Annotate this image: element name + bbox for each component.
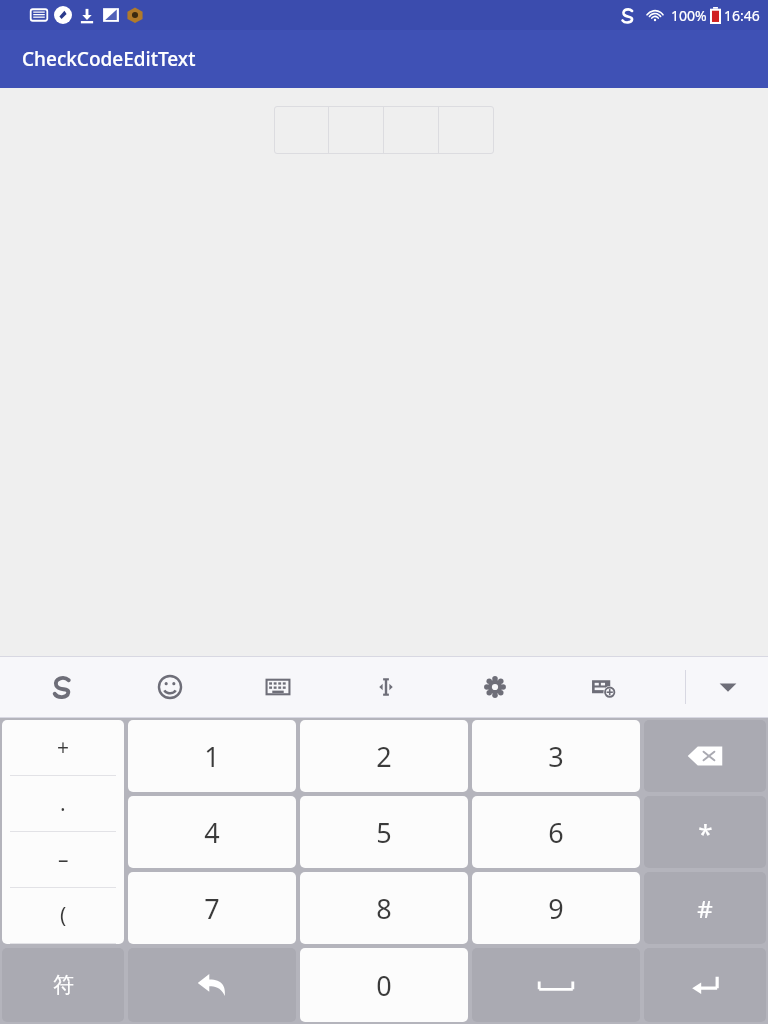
staticText: *: [698, 815, 713, 850]
button[interactable]: Backspace: [644, 720, 766, 792]
button[interactable]: Emoji: [142, 659, 198, 715]
staticText: 4: [204, 814, 220, 851]
staticText: +: [57, 733, 70, 762]
button[interactable]: Back: [128, 948, 296, 1022]
button[interactable]: 5: [300, 796, 468, 868]
staticText: #: [697, 892, 713, 925]
staticText: .: [60, 789, 66, 818]
button[interactable]: *: [644, 796, 766, 868]
staticText: –: [58, 845, 69, 874]
button[interactable]: 8: [300, 872, 468, 944]
button[interactable]: 6: [472, 796, 640, 868]
staticText: 6: [548, 814, 564, 851]
staticText: CheckCodeEditText: [22, 46, 196, 72]
button[interactable]: #: [644, 872, 766, 944]
staticText: 8: [376, 890, 392, 927]
button[interactable]: Move cursor: [358, 659, 414, 715]
button[interactable]: Keyboard layout: [250, 659, 306, 715]
button[interactable]: 2: [300, 720, 468, 792]
button[interactable]: 1: [128, 720, 296, 792]
staticText: 16:46: [724, 6, 760, 25]
button[interactable]: Enter: [644, 948, 766, 1022]
staticText: 2: [376, 738, 392, 775]
button[interactable]: +: [2, 720, 124, 944]
staticText: 3: [548, 738, 564, 775]
button[interactable]: Add keyboard: [576, 659, 632, 715]
button[interactable]: 0: [300, 948, 468, 1022]
staticText: 7: [204, 890, 220, 927]
button[interactable]: 7: [128, 872, 296, 944]
button[interactable]: 符: [2, 948, 124, 1022]
staticText: 0: [376, 967, 392, 1004]
button[interactable]: [274, 106, 494, 154]
button[interactable]: Hide keyboard: [700, 659, 756, 715]
button[interactable]: Space: [472, 948, 640, 1022]
staticText: 100%: [671, 6, 707, 25]
staticText: (: [60, 901, 67, 930]
staticText: 符: [53, 972, 74, 998]
button[interactable]: Sogou input: [34, 659, 90, 715]
button[interactable]: Settings: [467, 659, 523, 715]
button[interactable]: 9: [472, 872, 640, 944]
staticText: 9: [548, 890, 564, 927]
staticText: 5: [376, 814, 392, 851]
button[interactable]: 4: [128, 796, 296, 868]
staticText: 1: [204, 738, 220, 775]
button[interactable]: 3: [472, 720, 640, 792]
